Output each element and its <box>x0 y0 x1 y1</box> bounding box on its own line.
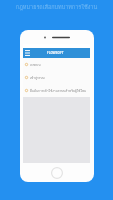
button[interactable]: ยืนยันการเข้าใช้งานระบบสำหรับผู้ใช้ใหม <box>23 84 90 97</box>
staticText: ลงทะเบ <box>30 62 41 67</box>
staticText: FLOWSOFT <box>47 51 64 55</box>
button[interactable]: Menu <box>22 48 32 58</box>
button[interactable]: Menu <box>23 48 90 58</box>
button[interactable]: ลงทะเบ <box>23 58 90 71</box>
staticText: ยืนยันการเข้าใช้งานระบบสำหรับผู้ใช้ใหม <box>30 88 87 93</box>
button[interactable]: เข้าสู่ระบบ <box>23 71 90 84</box>
staticText: กฎหมายรถเลือกบทบาทการใช้งาน <box>0 3 113 12</box>
staticText: เข้าสู่ระบบ <box>30 75 45 80</box>
